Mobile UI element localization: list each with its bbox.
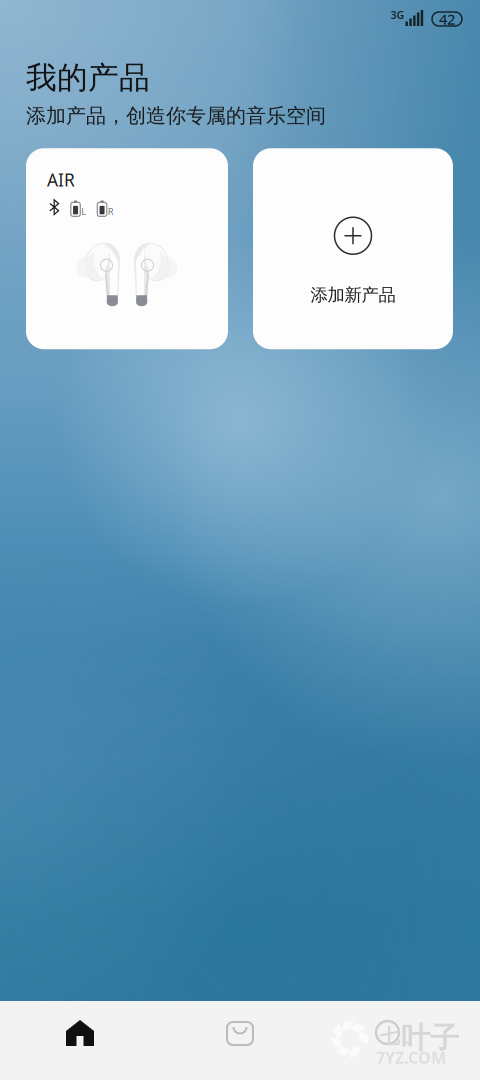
staticText: 添加新产品: [310, 284, 395, 305]
staticText: R: [108, 205, 114, 218]
button[interactable]: AIR: [26, 148, 228, 349]
staticText: 七: [380, 1024, 400, 1049]
staticText: 3G: [390, 8, 404, 22]
staticText: 我的产品: [26, 59, 150, 97]
button[interactable]: Store: [160, 1001, 320, 1080]
button[interactable]: 添加新产品: [253, 148, 453, 349]
staticText: 42: [439, 9, 455, 29]
button[interactable]: Home: [0, 1001, 160, 1080]
staticText: L: [81, 205, 86, 218]
staticText: 叶子: [401, 1020, 459, 1056]
staticText: 7YZ.COM: [376, 1047, 446, 1068]
staticText: AIR: [47, 168, 75, 191]
staticText: 添加产品，创造你专属的音乐空间: [26, 104, 326, 128]
